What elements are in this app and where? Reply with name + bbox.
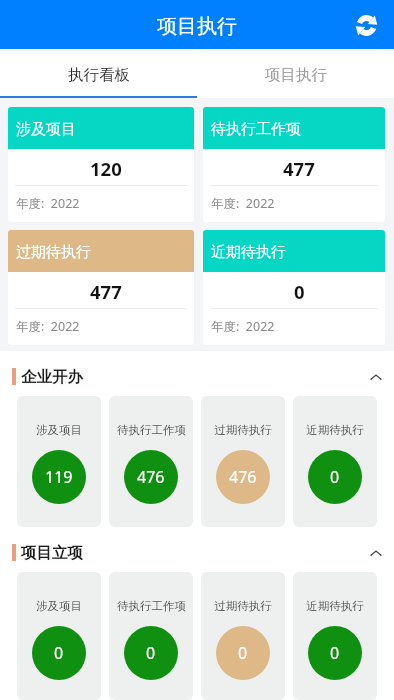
- button[interactable]: 执行看板: [0, 49, 197, 98]
- staticText: 过期待执行: [214, 423, 272, 437]
- staticText: 执行看板: [68, 65, 130, 85]
- button[interactable]: 待执行工作项: [203, 107, 385, 222]
- staticText: 待执行工作项: [211, 120, 301, 139]
- staticText: 119: [45, 466, 73, 488]
- staticText: 0: [330, 642, 340, 664]
- staticText: 年度: 2022: [211, 318, 275, 335]
- staticText: 476: [137, 466, 165, 488]
- button[interactable]: 近期待执行: [293, 572, 377, 700]
- staticText: 477: [90, 279, 122, 304]
- staticText: 年度: 2022: [16, 318, 80, 335]
- button[interactable]: 过期待执行: [201, 572, 285, 700]
- staticText: 待执行工作项: [117, 423, 186, 437]
- staticText: 120: [90, 156, 122, 181]
- button[interactable]: 待执行工作项: [109, 396, 193, 527]
- button[interactable]: 近期待执行: [203, 230, 385, 345]
- staticText: 0: [54, 642, 64, 664]
- button[interactable]: Refresh: [350, 9, 382, 41]
- staticText: 过期待执行: [214, 599, 272, 613]
- button[interactable]: 企业开办: [0, 357, 394, 396]
- button[interactable]: 待执行工作项: [109, 572, 193, 700]
- staticText: 项目执行: [265, 65, 327, 85]
- staticText: 项目执行: [157, 14, 237, 39]
- staticText: 项目立项: [21, 543, 83, 563]
- staticText: 0: [330, 466, 340, 488]
- staticText: 过期待执行: [16, 243, 91, 262]
- staticText: 年度: 2022: [211, 195, 275, 212]
- button[interactable]: 项目执行: [197, 49, 394, 98]
- button[interactable]: 涉及项目: [17, 572, 101, 700]
- staticText: 涉及项目: [16, 120, 76, 139]
- staticText: 0: [146, 642, 156, 664]
- button[interactable]: 涉及项目: [17, 396, 101, 527]
- staticText: 477: [283, 156, 315, 181]
- staticText: 476: [229, 466, 257, 488]
- staticText: 涉及项目: [36, 599, 82, 613]
- staticText: 近期待执行: [306, 599, 364, 613]
- staticText: 0: [294, 279, 305, 304]
- staticText: 年度: 2022: [16, 195, 80, 212]
- staticText: 企业开办: [21, 367, 83, 387]
- staticText: 涉及项目: [36, 423, 82, 437]
- staticText: 待执行工作项: [117, 599, 186, 613]
- button[interactable]: 涉及项目: [8, 107, 194, 222]
- button[interactable]: 近期待执行: [293, 396, 377, 527]
- button[interactable]: 项目立项: [0, 533, 394, 572]
- button[interactable]: 过期待执行: [8, 230, 194, 345]
- staticText: 0: [238, 642, 248, 664]
- staticText: 近期待执行: [306, 423, 364, 437]
- button[interactable]: 过期待执行: [201, 396, 285, 527]
- staticText: 近期待执行: [211, 243, 286, 262]
